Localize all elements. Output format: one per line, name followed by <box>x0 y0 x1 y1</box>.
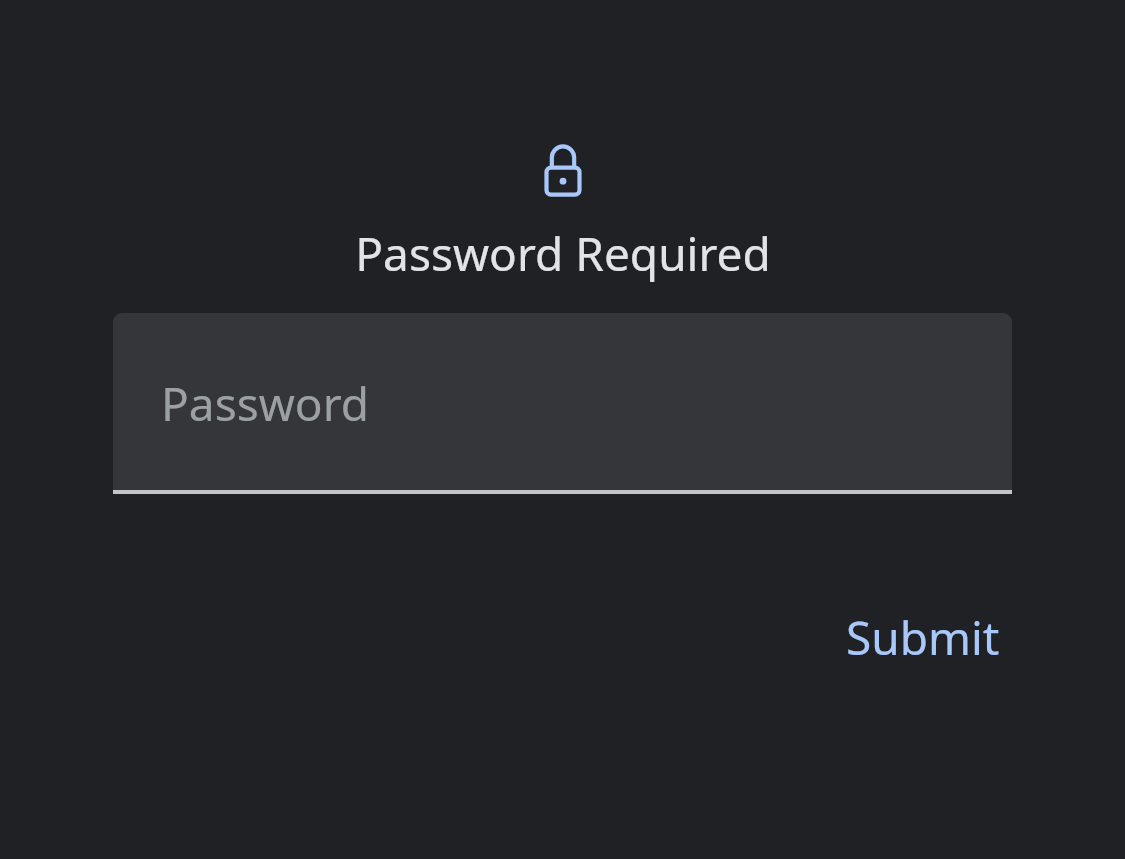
other: Locked <box>543 144 583 198</box>
button[interactable]: Password <box>113 313 1012 494</box>
staticText: Submit <box>846 606 1000 669</box>
staticText: Password Required <box>355 222 771 285</box>
button[interactable]: Submit <box>834 598 1012 677</box>
staticText: Password <box>161 372 370 435</box>
